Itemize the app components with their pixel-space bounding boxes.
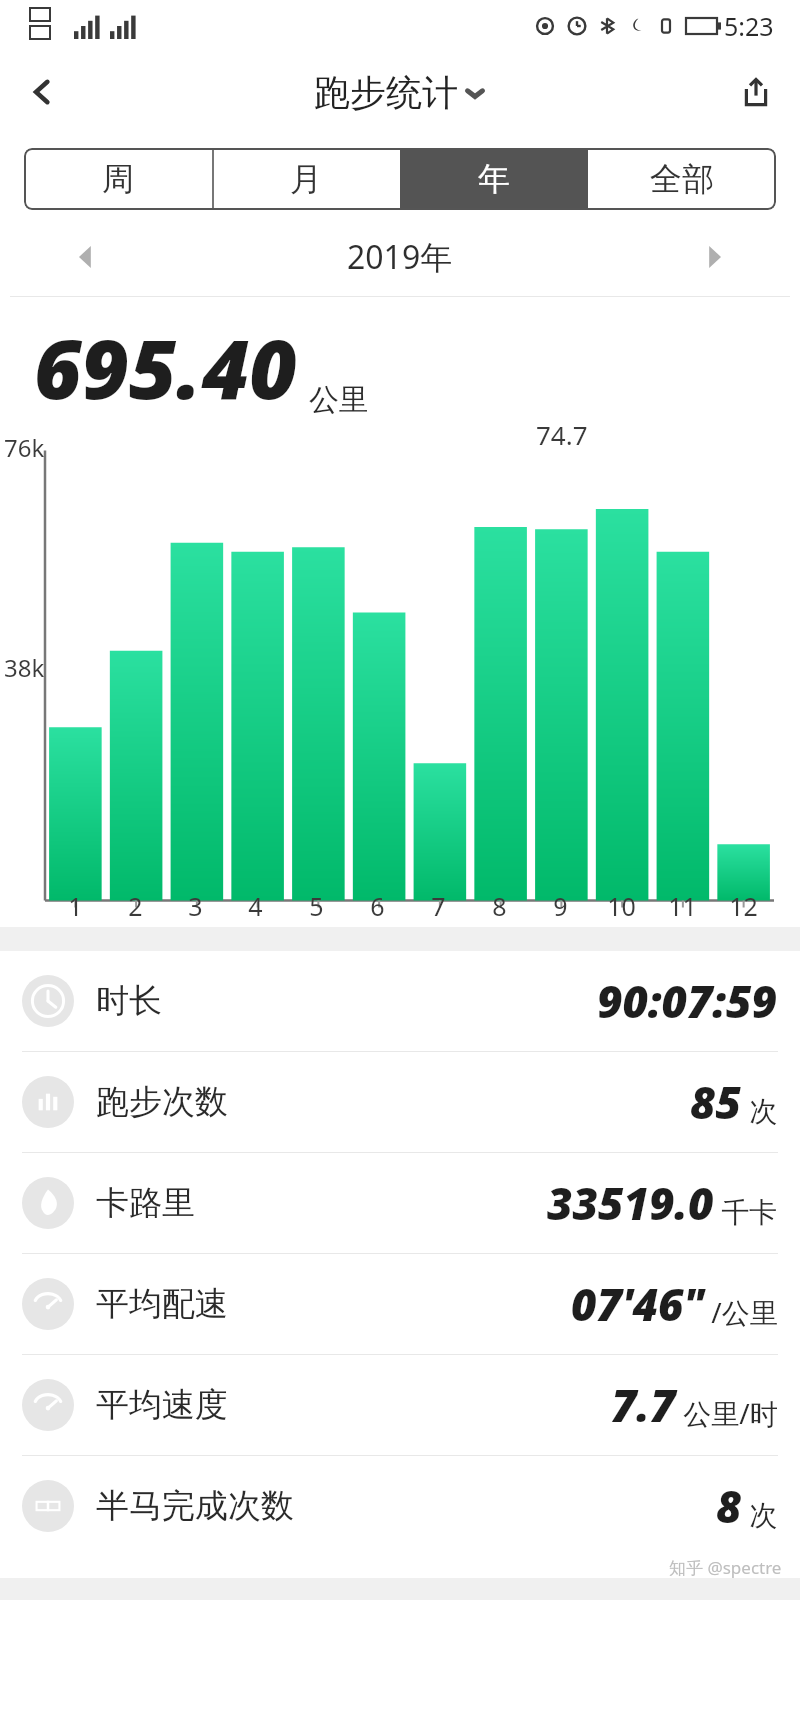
staticText: 12 <box>729 889 758 923</box>
staticText: 695.40 <box>34 311 297 423</box>
staticText: 跑步次数 <box>96 1081 228 1123</box>
staticText: 5:23 <box>724 9 774 43</box>
staticText: 公里/时 <box>676 1394 778 1432</box>
button[interactable]: 卡路里 <box>0 1153 800 1253</box>
staticText: 85 <box>690 1072 742 1132</box>
button[interactable]: 半马完成次数 <box>0 1456 800 1556</box>
staticText: 76k <box>4 431 45 464</box>
button[interactable]: Share <box>728 64 784 120</box>
staticText: 9 <box>553 889 568 923</box>
staticText: 8 <box>716 1476 742 1536</box>
button[interactable]: 全部 <box>588 148 776 210</box>
staticText: 次 <box>742 1091 778 1129</box>
staticText: 月 <box>290 159 322 199</box>
button[interactable]: 跑步统计 <box>314 70 486 115</box>
staticText: 跑步统计 <box>314 70 458 115</box>
staticText: 11 <box>668 889 697 923</box>
staticText: 3 <box>188 889 203 923</box>
staticText: 知乎 @spectre <box>669 1556 782 1578</box>
staticText: 5 <box>309 889 324 923</box>
button[interactable]: 平均速度 <box>0 1355 800 1455</box>
staticText: 2019年 <box>347 235 453 279</box>
staticText: 7 <box>431 889 446 923</box>
button[interactable]: Next year <box>692 235 736 279</box>
staticText: /公里 <box>704 1293 778 1331</box>
button[interactable]: Back <box>14 64 70 120</box>
button[interactable]: Previous year <box>64 235 108 279</box>
staticText: 全部 <box>650 159 714 199</box>
button[interactable]: 周 <box>24 148 212 210</box>
staticText: 平均速度 <box>96 1384 228 1426</box>
staticText: 8 <box>492 889 507 923</box>
button[interactable]: 跑步次数 <box>0 1052 800 1152</box>
staticText: 33519.0 <box>547 1173 714 1233</box>
staticText: 1 <box>68 889 83 923</box>
staticText: 38k <box>4 651 45 684</box>
staticText: 90:07:59 <box>597 971 778 1031</box>
staticText: 6 <box>370 889 385 923</box>
button[interactable]: 月 <box>212 148 400 210</box>
staticText: 7.7 <box>611 1375 676 1435</box>
staticText: 2 <box>128 889 143 923</box>
button[interactable]: 平均配速 <box>0 1254 800 1354</box>
staticText: 半马完成次数 <box>96 1485 294 1527</box>
staticText: 74.7 <box>536 417 588 452</box>
staticText: 时长 <box>96 980 162 1022</box>
staticText: 千卡 <box>714 1192 778 1230</box>
staticText: 公里 <box>309 381 369 419</box>
staticText: 次 <box>742 1495 778 1533</box>
staticText: 周 <box>102 159 134 199</box>
staticText: 年 <box>478 159 510 199</box>
staticText: 4 <box>248 889 263 923</box>
button[interactable]: 年 <box>400 148 588 210</box>
staticText: 10 <box>607 889 636 923</box>
staticText: 07'46" <box>571 1274 704 1334</box>
button[interactable]: 时长 <box>0 951 800 1051</box>
staticText: 平均配速 <box>96 1283 228 1325</box>
staticText: 卡路里 <box>96 1182 195 1224</box>
